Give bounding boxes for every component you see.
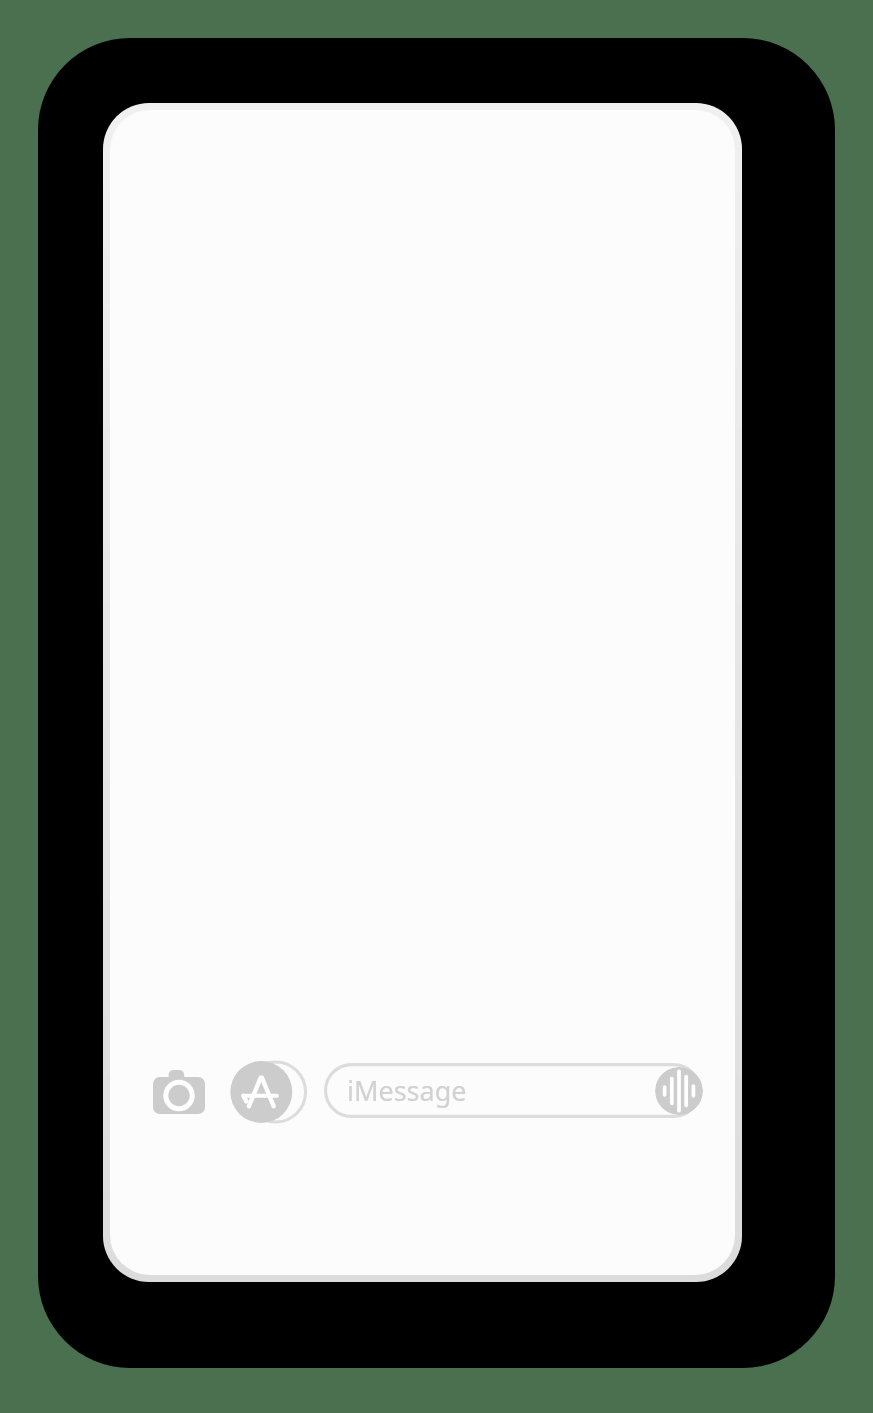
button[interactable]: App Store: [228, 1056, 306, 1128]
button[interactable]: iMessage: [323, 1062, 702, 1119]
button[interactable]: Camera: [143, 1058, 215, 1126]
staticText: iMessage: [347, 1072, 467, 1109]
button[interactable]: Record audio message: [655, 1067, 703, 1115]
